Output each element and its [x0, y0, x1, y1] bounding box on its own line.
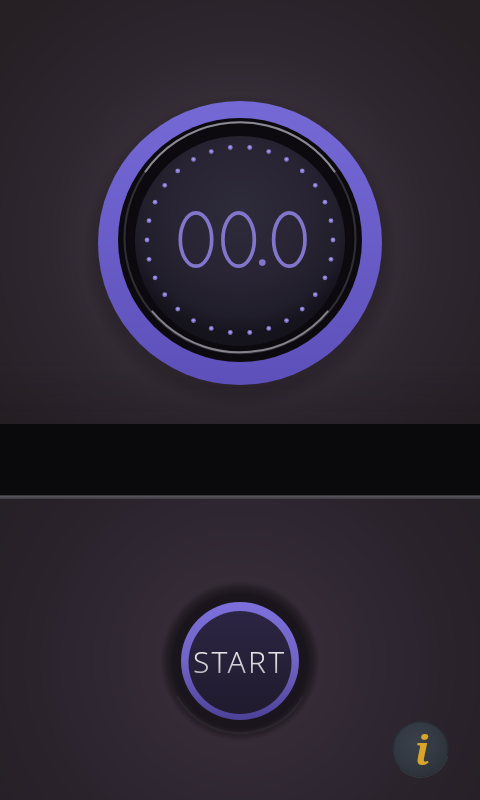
button[interactable]: i: [392, 721, 449, 778]
button[interactable]: START: [180, 601, 300, 721]
staticText: i: [415, 722, 430, 776]
staticText: START: [193, 641, 287, 682]
